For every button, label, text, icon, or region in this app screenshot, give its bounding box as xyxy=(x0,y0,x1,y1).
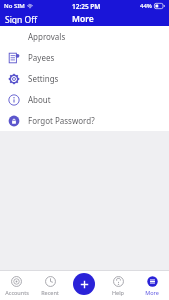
staticText: More xyxy=(72,13,94,25)
staticText: About xyxy=(28,94,51,105)
button[interactable]: About xyxy=(0,89,169,110)
button[interactable]: Forgot Password? xyxy=(0,110,169,131)
staticText: No SIM xyxy=(4,2,25,10)
button[interactable]: Payees xyxy=(0,47,169,68)
button[interactable]: Help xyxy=(101,275,135,300)
staticText: 44% xyxy=(140,2,152,10)
button[interactable]: Sign Off xyxy=(0,12,43,26)
staticText: 12:25 PM xyxy=(72,2,101,11)
staticText: Payees xyxy=(28,52,55,63)
staticText: Approvals xyxy=(28,31,66,42)
button[interactable]: Settings xyxy=(0,68,169,89)
button[interactable]: Approvals xyxy=(0,26,169,47)
button[interactable]: Accounts xyxy=(0,275,33,300)
staticText: More xyxy=(145,289,159,296)
button[interactable]: Add new xyxy=(73,273,95,295)
staticText: Settings xyxy=(28,73,59,84)
button[interactable]: More xyxy=(135,275,169,300)
staticText: Accounts xyxy=(5,289,29,296)
staticText: Sign Off xyxy=(5,14,38,24)
staticText: Forgot Password? xyxy=(28,115,95,126)
button[interactable]: Recent xyxy=(33,275,67,300)
staticText: Recent xyxy=(41,289,59,296)
staticText: Help xyxy=(112,289,124,296)
